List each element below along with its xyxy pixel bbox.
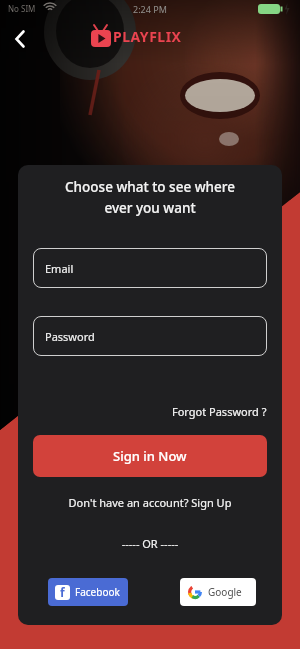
staticText: Choose what to see where ever you want	[18, 178, 282, 217]
staticText: PLAYFLIX	[113, 27, 182, 46]
staticText: ----- OR -----	[18, 536, 282, 551]
button[interactable]: Google	[180, 578, 256, 606]
button[interactable]: f	[48, 578, 128, 606]
staticText: 2:24 PM	[133, 3, 167, 15]
button[interactable]: Don't have an account? Sign Up	[18, 495, 282, 510]
staticText: No SIM	[8, 3, 36, 14]
button[interactable]	[6, 26, 34, 52]
button[interactable]: Email	[33, 248, 267, 288]
staticText: Email	[45, 261, 74, 276]
staticText: Password	[45, 329, 95, 344]
staticText: f	[60, 585, 65, 599]
staticText: Google	[208, 585, 242, 599]
staticText: Sign in Now	[113, 447, 187, 465]
button[interactable]: Password	[33, 316, 267, 356]
button[interactable]: Forgot Password ?	[172, 404, 267, 419]
button[interactable]: Sign in Now	[33, 435, 267, 477]
staticText: Facebook	[75, 585, 120, 599]
